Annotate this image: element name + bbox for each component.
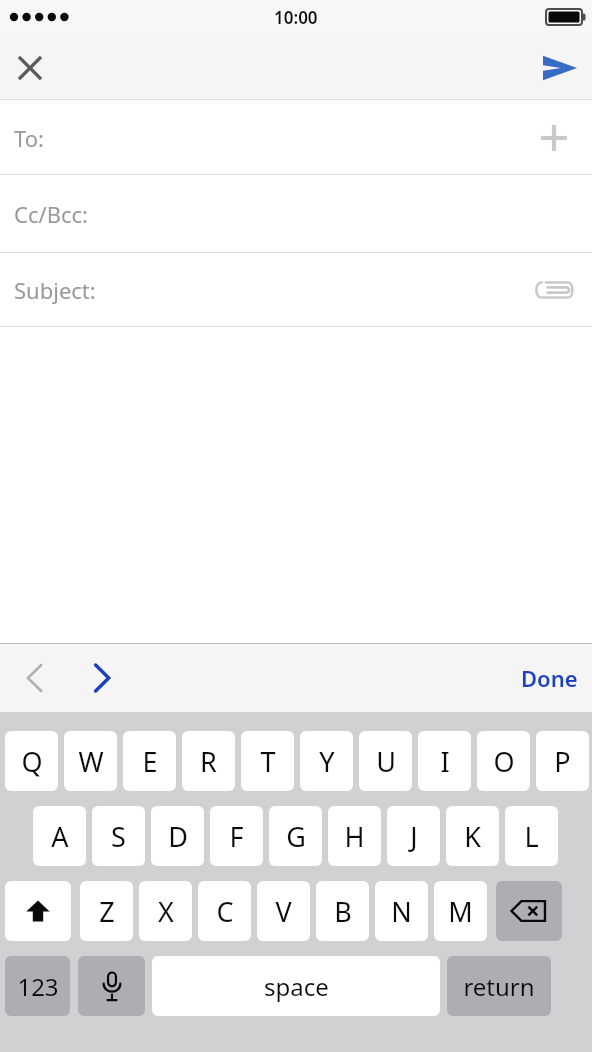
- staticText: F: [229, 818, 244, 855]
- button[interactable]: Add recipient: [528, 112, 580, 164]
- staticText: C: [216, 893, 234, 930]
- staticText: Subject:: [14, 275, 96, 305]
- button[interactable]: Q: [5, 731, 58, 791]
- staticText: N: [391, 893, 412, 930]
- staticText: Z: [99, 893, 115, 930]
- button[interactable]: F: [210, 806, 263, 866]
- button[interactable]: Cc/Bcc:: [0, 175, 592, 253]
- staticText: M: [448, 893, 473, 930]
- button[interactable]: Next field: [76, 652, 128, 704]
- button[interactable]: Send: [528, 38, 592, 98]
- button[interactable]: Y: [300, 731, 353, 791]
- button[interactable]: Attach file: [528, 264, 580, 316]
- staticText: K: [464, 818, 481, 855]
- button[interactable]: H: [328, 806, 381, 866]
- button[interactable]: To:: [0, 100, 592, 175]
- button[interactable]: T: [241, 731, 294, 791]
- button[interactable]: Close: [0, 38, 60, 98]
- button[interactable]: I: [418, 731, 471, 791]
- button[interactable]: G: [269, 806, 322, 866]
- button[interactable]: return: [447, 956, 551, 1016]
- button[interactable]: space: [152, 956, 440, 1016]
- staticText: 10:00: [274, 6, 318, 29]
- button[interactable]: 123: [5, 956, 70, 1016]
- staticText: U: [376, 743, 396, 780]
- button[interactable]: Shift: [5, 881, 71, 941]
- button[interactable]: M: [434, 881, 487, 941]
- button[interactable]: U: [359, 731, 412, 791]
- button[interactable]: E: [123, 731, 176, 791]
- staticText: X: [158, 893, 174, 930]
- staticText: P: [554, 743, 571, 780]
- staticText: J: [410, 818, 418, 855]
- staticText: I: [440, 743, 450, 780]
- staticText: Y: [319, 743, 335, 780]
- staticText: Q: [21, 743, 43, 780]
- button[interactable]: K: [446, 806, 499, 866]
- staticText: B: [334, 893, 352, 930]
- staticText: Cc/Bcc:: [14, 199, 88, 229]
- button[interactable]: W: [64, 731, 117, 791]
- button[interactable]: Done: [515, 655, 584, 701]
- staticText: T: [260, 743, 276, 780]
- button[interactable]: X: [139, 881, 192, 941]
- staticText: Done: [521, 663, 578, 693]
- button[interactable]: P: [536, 731, 589, 791]
- button[interactable]: J: [387, 806, 440, 866]
- button[interactable]: S: [92, 806, 145, 866]
- staticText: E: [142, 743, 158, 780]
- staticText: S: [111, 818, 126, 855]
- staticText: space: [264, 970, 329, 1003]
- button[interactable]: L: [505, 806, 558, 866]
- staticText: return: [463, 970, 535, 1003]
- button[interactable]: A: [33, 806, 86, 866]
- staticText: V: [275, 893, 292, 930]
- button[interactable]: Previous field: [8, 652, 60, 704]
- staticText: A: [51, 818, 69, 855]
- staticText: W: [78, 743, 104, 780]
- button[interactable]: B: [316, 881, 369, 941]
- button[interactable]: C: [198, 881, 251, 941]
- staticText: D: [168, 818, 188, 855]
- button[interactable]: Backspace: [496, 881, 562, 941]
- button[interactable]: N: [375, 881, 428, 941]
- button[interactable]: O: [477, 731, 530, 791]
- button[interactable]: V: [257, 881, 310, 941]
- button[interactable]: Dictation: [78, 956, 145, 1016]
- staticText: L: [524, 818, 539, 855]
- button[interactable]: R: [182, 731, 235, 791]
- staticText: To:: [14, 123, 44, 153]
- staticText: G: [286, 818, 306, 855]
- staticText: H: [344, 818, 365, 855]
- staticText: R: [200, 743, 217, 780]
- staticText: 123: [17, 970, 59, 1003]
- staticText: O: [493, 743, 515, 780]
- button[interactable]: Subject:: [0, 253, 592, 327]
- button[interactable]: Z: [80, 881, 133, 941]
- button[interactable]: D: [151, 806, 204, 866]
